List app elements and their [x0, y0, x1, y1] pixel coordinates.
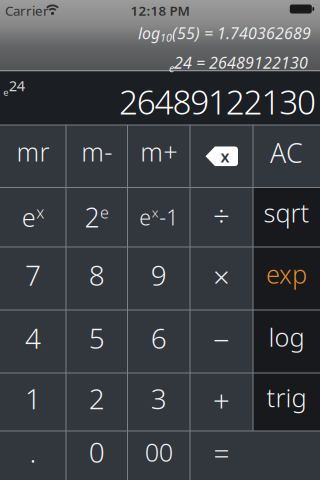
staticText: ÷ — [213, 196, 230, 235]
staticText: e — [3, 86, 8, 98]
staticText: e — [22, 200, 36, 234]
staticText: 0 — [89, 433, 105, 471]
staticText: m+ — [140, 135, 177, 168]
staticText: 7 — [25, 256, 41, 294]
staticText: x — [36, 202, 44, 223]
staticText: (55) = 1.740362689 — [172, 22, 311, 44]
button[interactable]: mr — [0, 125, 66, 187]
button[interactable]: log — [253, 310, 320, 373]
button[interactable]: 2 — [66, 187, 127, 247]
button[interactable]: × — [190, 247, 253, 310]
staticText: 8 — [89, 256, 105, 294]
staticText: 3 — [151, 380, 167, 417]
button[interactable]: 0 — [66, 431, 127, 480]
staticText: 24 = 26489122130 — [174, 52, 308, 73]
staticText: 1 — [25, 380, 41, 417]
staticText: 4 — [25, 319, 41, 357]
staticText: exp — [266, 257, 307, 291]
button[interactable]: exp — [253, 247, 320, 310]
button[interactable]: ÷ — [190, 187, 253, 247]
button[interactable]: 6 — [127, 310, 190, 373]
staticText: 6 — [151, 319, 167, 357]
button[interactable]: 8 — [66, 247, 127, 310]
staticText: 5 — [89, 319, 105, 357]
button[interactable]: Delete — [190, 125, 253, 187]
button[interactable]: = — [190, 431, 320, 480]
button[interactable]: 2 — [66, 373, 127, 431]
staticText: sqrt — [263, 196, 309, 229]
button[interactable]: e — [127, 187, 190, 247]
staticText: log — [268, 320, 304, 354]
button[interactable]: + — [190, 373, 253, 431]
button[interactable]: AC — [253, 125, 320, 187]
staticText: x — [220, 146, 229, 167]
staticText: trig — [266, 381, 306, 414]
staticText: -1 — [159, 203, 178, 231]
button[interactable]: 7 — [0, 247, 66, 310]
staticText: 10 — [160, 30, 172, 45]
staticText: m- — [81, 135, 112, 168]
button[interactable]: m- — [66, 125, 127, 187]
button[interactable]: − — [190, 310, 253, 373]
staticText: mr — [16, 135, 49, 168]
button[interactable]: . — [0, 431, 66, 480]
staticText: 00 — [145, 435, 173, 469]
staticText: 12:18 PM — [130, 2, 189, 19]
staticText: = — [213, 435, 229, 472]
button[interactable]: 9 — [127, 247, 190, 310]
staticText: + — [213, 380, 230, 419]
button[interactable]: trig — [253, 373, 320, 431]
button[interactable]: sqrt — [253, 187, 320, 247]
button[interactable]: 00 — [127, 431, 190, 480]
staticText: e — [139, 203, 151, 231]
staticText: . — [29, 433, 36, 471]
staticText: AC — [270, 135, 303, 170]
staticText: e — [100, 202, 109, 223]
staticText: x — [152, 203, 159, 221]
button[interactable]: m+ — [127, 125, 190, 187]
staticText: log — [138, 22, 160, 44]
button[interactable]: e — [0, 187, 66, 247]
staticText: 2 — [84, 199, 99, 235]
staticText: × — [213, 257, 230, 296]
staticText: 9 — [151, 256, 167, 294]
button[interactable]: 3 — [127, 373, 190, 431]
staticText: 2 — [89, 380, 105, 417]
button[interactable]: 4 — [0, 310, 66, 373]
staticText: Carrier — [5, 2, 49, 19]
staticText: 24 — [9, 76, 25, 95]
staticText: 26489122130 — [119, 79, 316, 124]
button[interactable]: 1 — [0, 373, 66, 431]
button[interactable]: 5 — [66, 310, 127, 373]
staticText: e — [169, 61, 174, 75]
staticText: − — [213, 320, 230, 359]
